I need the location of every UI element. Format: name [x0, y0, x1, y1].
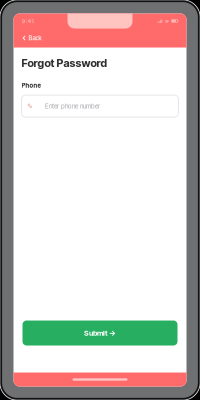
staticText: Submit →: [84, 329, 116, 337]
button[interactable]: Back: [13, 30, 48, 46]
button[interactable]: Submit →: [22, 320, 177, 345]
staticText: Forgot Password: [21, 56, 107, 70]
staticText: Back: [28, 34, 41, 42]
staticText: 9:41: [21, 17, 33, 25]
staticText: Phone: [21, 82, 40, 89]
staticText: Enter phone number: [45, 102, 100, 110]
